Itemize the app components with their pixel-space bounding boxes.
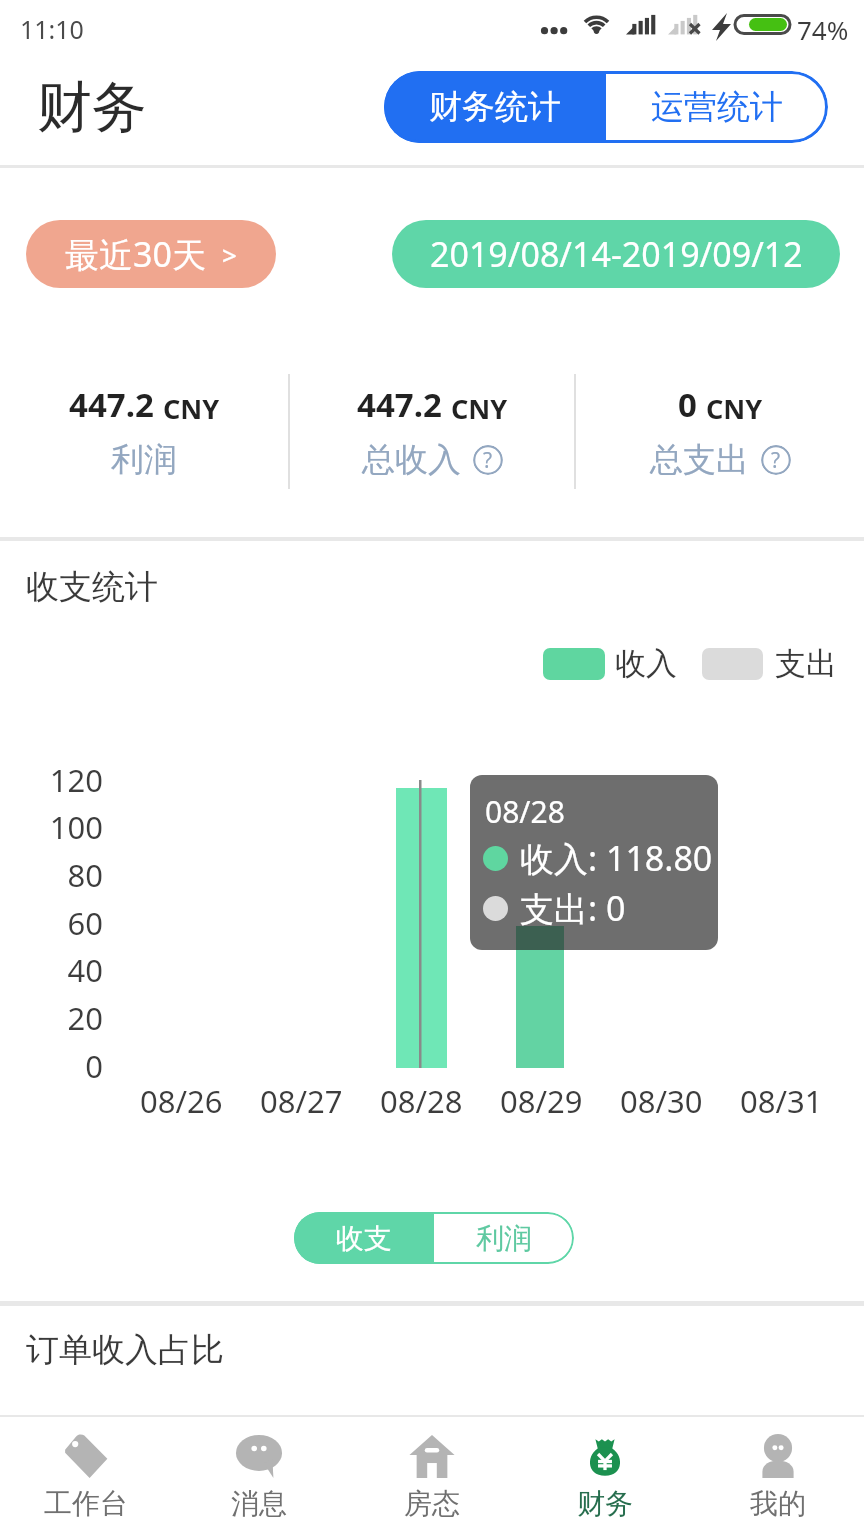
staticText: 11:10 (20, 12, 84, 46)
staticText: 2019/08/14-2019/09/12 (430, 231, 803, 277)
staticText: 运营统计 (651, 86, 783, 128)
staticText: 0 (678, 382, 697, 427)
staticText: 74% (797, 12, 849, 47)
button[interactable]: 消息 (172, 1417, 345, 1536)
staticText: 我的 (750, 1486, 806, 1521)
staticText: 20 (67, 997, 103, 1039)
staticText: 消息 (231, 1486, 287, 1521)
staticText: 40 (67, 949, 103, 991)
button[interactable]: 关于总支出 的说明 (761, 445, 791, 475)
staticText: 财务统计 (429, 86, 561, 128)
staticText: 支出 (775, 644, 837, 683)
button[interactable]: 0 (576, 374, 864, 481)
staticText: 支出: 0 (520, 885, 626, 931)
staticText: CNY (163, 390, 220, 427)
staticText: 100 (49, 806, 103, 848)
button[interactable]: 房态 (345, 1417, 518, 1536)
staticText: 447.2 (69, 382, 154, 427)
staticText: 收支 (336, 1221, 392, 1256)
staticText: 工作台 (44, 1486, 128, 1521)
button[interactable]: 工作台 (0, 1417, 172, 1536)
staticText: > (222, 237, 237, 272)
staticText: 收支统计 (26, 566, 158, 608)
staticText: 120 (49, 759, 103, 801)
staticText: 财务 (37, 73, 147, 142)
staticText: 0 (85, 1045, 103, 1087)
button[interactable]: 最近30天 (26, 220, 276, 288)
staticText: 利润 (476, 1221, 532, 1256)
staticText: 财务 (577, 1486, 633, 1521)
staticText: CNY (706, 390, 763, 427)
button[interactable]: 利润 (434, 1212, 574, 1264)
staticText: 最近30天 (65, 231, 206, 277)
button[interactable]: 财务 (518, 1417, 691, 1536)
staticText: ? (771, 446, 781, 475)
staticText: 收入: 118.80 (520, 835, 713, 881)
staticText: CNY (451, 390, 508, 427)
staticText: 总收入 (362, 439, 461, 481)
button[interactable]: 运营统计 (606, 71, 828, 143)
staticText: 订单收入占比 (26, 1329, 224, 1371)
staticText: 08/28 (485, 791, 565, 832)
staticText: 08/28 (380, 1080, 463, 1122)
button[interactable]: 447.2 (0, 374, 288, 481)
staticText: 08/31 (740, 1080, 823, 1122)
staticText: 收入 (615, 644, 677, 683)
staticText: 总支出 (650, 439, 749, 481)
staticText: ? (483, 446, 493, 475)
button[interactable]: 447.2 (288, 374, 576, 481)
button[interactable]: 财务统计 (384, 71, 606, 143)
staticText: 房态 (404, 1486, 460, 1521)
button[interactable]: 我的 (691, 1417, 864, 1536)
staticText: 60 (67, 902, 103, 944)
staticText: 08/26 (140, 1080, 223, 1122)
staticText: 08/27 (260, 1080, 343, 1122)
staticText: 447.2 (357, 382, 442, 427)
staticText: 08/29 (500, 1080, 583, 1122)
button[interactable]: 收支 (294, 1212, 434, 1264)
staticText: 08/30 (620, 1080, 703, 1122)
staticText: 80 (67, 854, 103, 896)
button[interactable]: 2019/08/14-2019/09/12 (392, 220, 840, 288)
staticText: 利润 (111, 439, 177, 481)
button[interactable]: 关于总收入 的说明 (473, 445, 503, 475)
